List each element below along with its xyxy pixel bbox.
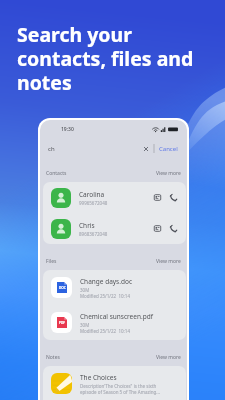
staticText: ch xyxy=(48,145,55,153)
staticText: Modified 25/1/22 10:14 xyxy=(80,293,130,299)
staticText: DOC xyxy=(59,286,66,290)
staticText: Search your contacts, files and notes xyxy=(17,21,222,96)
button[interactable]: Chris xyxy=(43,213,186,244)
staticText: Chemical sunscreen.pdf xyxy=(80,312,153,321)
staticText: Change days.doc xyxy=(80,277,133,286)
staticText: The Choices xyxy=(80,373,117,382)
button[interactable]: View more xyxy=(156,354,181,361)
staticText: Modified 25/1/22 10:14 xyxy=(80,328,130,334)
staticText: Description'The Choices" is the sixth ep… xyxy=(80,383,160,395)
staticText: Cancel xyxy=(159,145,178,153)
staticText: Carolina xyxy=(79,190,105,199)
staticText: PDF xyxy=(59,321,66,325)
staticText: 99965672048 xyxy=(79,200,108,206)
button[interactable]: DOC xyxy=(43,270,186,305)
button[interactable]: Message xyxy=(152,192,163,203)
staticText: 89683672048 xyxy=(79,231,108,237)
button[interactable]: View more xyxy=(156,258,181,265)
staticText: View more xyxy=(156,354,181,361)
staticText: Contacts xyxy=(46,170,67,177)
staticText: 30M xyxy=(80,322,90,328)
button[interactable]: Call xyxy=(168,192,179,203)
button[interactable]: View more xyxy=(156,170,181,177)
button[interactable]: Call xyxy=(168,223,179,234)
button[interactable]: Clear search xyxy=(139,142,152,155)
button[interactable]: Carolina xyxy=(43,182,186,213)
staticText: 30M xyxy=(80,287,90,293)
button[interactable]: Message xyxy=(152,223,163,234)
button[interactable]: Cancel xyxy=(157,143,180,155)
staticText: Notes xyxy=(46,354,60,361)
button[interactable]: The Choices xyxy=(43,366,186,400)
staticText: View more xyxy=(156,170,181,177)
staticText: 19:30 xyxy=(61,126,74,133)
staticText: View more xyxy=(156,258,181,265)
staticText: Chris xyxy=(79,221,95,230)
button[interactable]: PDF xyxy=(43,305,186,340)
staticText: Files xyxy=(46,258,57,265)
